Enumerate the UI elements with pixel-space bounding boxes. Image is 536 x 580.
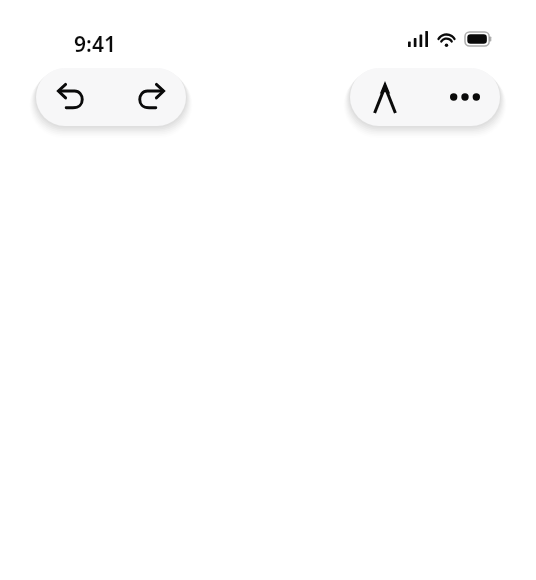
staticText: 9:41 bbox=[74, 30, 116, 59]
button[interactable]: Redo bbox=[128, 74, 174, 120]
button[interactable]: Drawing tool bbox=[362, 74, 408, 120]
button[interactable]: More options bbox=[442, 74, 488, 120]
button[interactable]: Undo bbox=[48, 74, 94, 120]
